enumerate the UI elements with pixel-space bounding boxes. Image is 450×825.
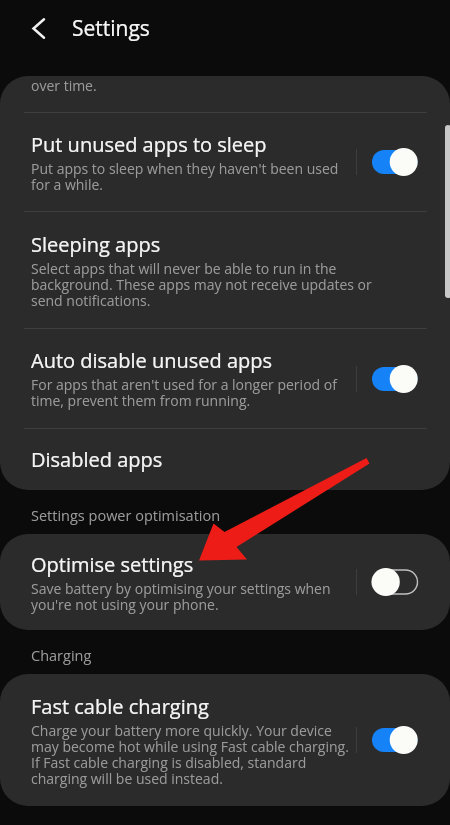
staticText: Select apps that will never be able to r…	[31, 259, 372, 310]
staticText: Optimise settings	[31, 551, 194, 578]
button[interactable]: Sleeping apps	[0, 212, 450, 328]
button[interactable]: Disabled apps	[0, 429, 450, 490]
button[interactable]: Put unused apps to sleep	[0, 113, 450, 211]
staticText: Put unused apps to sleep	[31, 131, 267, 158]
button[interactable]: Back	[0, 0, 56, 56]
button[interactable]: Switch on	[357, 716, 421, 764]
staticText: Charge your battery more quickly. Your d…	[31, 721, 349, 788]
staticText: Charging	[31, 646, 92, 666]
staticText: Fast cable charging	[31, 693, 209, 720]
button[interactable]: Switch on	[357, 138, 421, 186]
staticText: Disabled apps	[31, 446, 163, 473]
staticText: Save battery by optimising your settings…	[31, 579, 331, 614]
staticText: Auto disable unused apps	[31, 347, 273, 374]
staticText: over time.	[31, 76, 97, 95]
button[interactable]: Switch off	[357, 558, 421, 606]
staticText: Sleeping apps	[31, 231, 161, 258]
button[interactable]: Switch on	[357, 355, 421, 403]
button[interactable]: Fast cable charging	[0, 674, 450, 806]
staticText: For apps that aren't used for a longer p…	[31, 375, 337, 410]
button[interactable]: Optimise settings	[0, 534, 450, 630]
staticText: Settings power optimisation	[31, 506, 221, 526]
button[interactable]: Auto disable unused apps	[0, 329, 450, 428]
staticText: Settings	[72, 14, 150, 43]
staticText: Put apps to sleep when they haven't been…	[31, 159, 339, 194]
